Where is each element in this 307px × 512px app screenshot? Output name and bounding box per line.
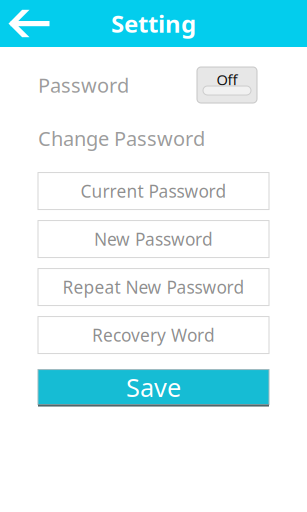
- button[interactable]: Back: [0, 0, 58, 47]
- staticText: Repeat New Password: [62, 276, 244, 299]
- staticText: New Password: [94, 228, 213, 251]
- staticText: Current Password: [80, 180, 226, 203]
- button[interactable]: Recovery Word: [38, 317, 269, 354]
- button[interactable]: Password toggle, Off: [197, 67, 257, 103]
- staticText: Recovery Word: [92, 324, 215, 347]
- staticText: Change Password: [38, 125, 205, 152]
- staticText: Setting: [111, 8, 196, 39]
- staticText: Password: [38, 72, 129, 98]
- staticText: Off: [216, 70, 237, 89]
- button[interactable]: Current Password: [38, 173, 269, 210]
- button[interactable]: New Password: [38, 221, 269, 258]
- staticText: Save: [126, 370, 181, 404]
- button[interactable]: Save: [38, 370, 269, 407]
- button[interactable]: Repeat New Password: [38, 269, 269, 306]
